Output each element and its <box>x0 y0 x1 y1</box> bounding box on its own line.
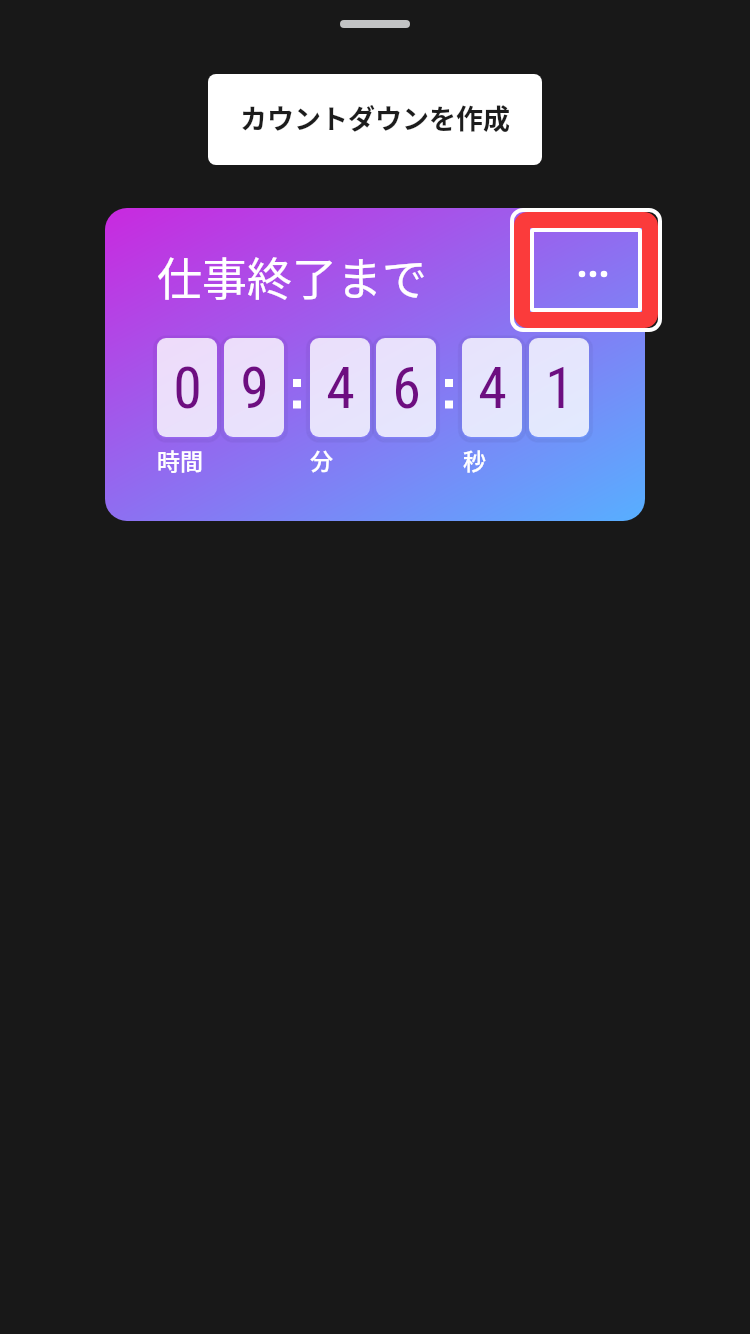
staticText: 仕事終了まで <box>157 244 428 309</box>
staticText: カウントダウンを作成 <box>240 98 510 137</box>
staticText: 分 <box>310 443 333 476</box>
staticText: 時間 <box>157 443 203 476</box>
button[interactable]: More options <box>510 208 662 332</box>
staticText: 9 <box>240 354 269 422</box>
staticText: 4 <box>478 354 507 422</box>
staticText: 秒 <box>463 443 486 476</box>
button[interactable]: カウントダウンを作成 <box>208 74 542 165</box>
staticText: 0 <box>173 354 202 422</box>
staticText: 6 <box>392 354 421 422</box>
button[interactable]: 仕事終了まで <box>105 208 645 521</box>
staticText: 1 <box>545 354 574 422</box>
staticText: 4 <box>326 354 355 422</box>
